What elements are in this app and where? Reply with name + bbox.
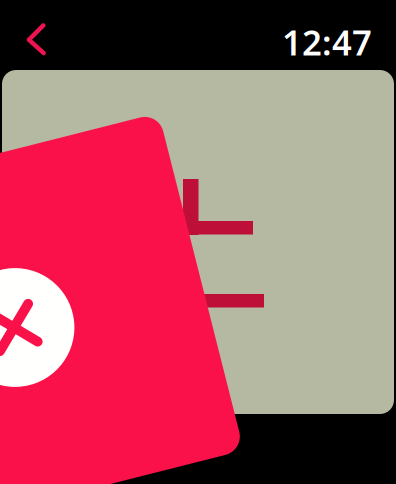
button[interactable]: Back — [15, 19, 71, 75]
staticText: 12:47 — [282, 19, 372, 65]
